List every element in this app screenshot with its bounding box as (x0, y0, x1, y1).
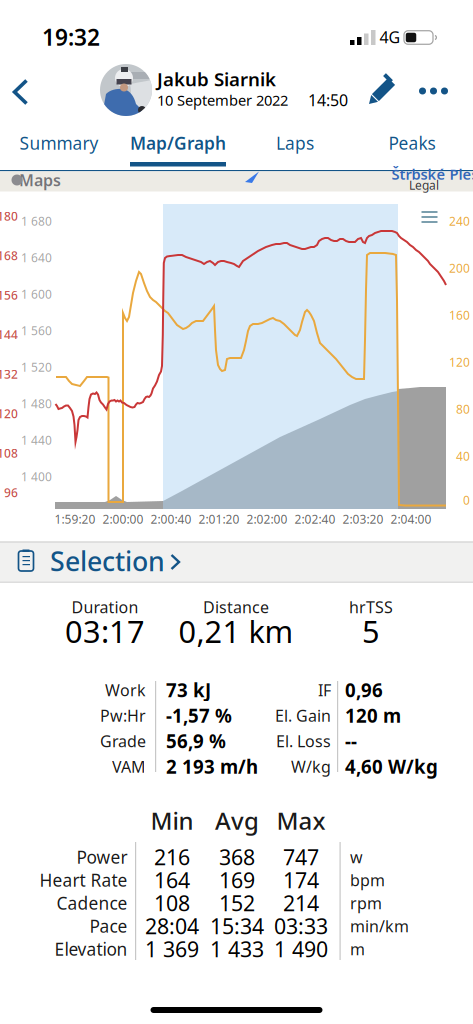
staticText: -- (345, 729, 357, 753)
button[interactable]: Back (0, 70, 40, 114)
staticText: hrTSS (349, 596, 393, 618)
staticText: Pace (89, 914, 127, 937)
staticText: 214 (283, 889, 319, 917)
staticText: 152 (219, 889, 255, 917)
staticText: 15:34 (210, 912, 264, 940)
staticText: 169 (219, 866, 255, 894)
staticText: Pw:Hr (100, 705, 146, 726)
staticText: 73 kJ (166, 678, 211, 702)
staticText: 174 (283, 866, 319, 894)
staticText: 10 September 2022 (157, 90, 288, 110)
staticText: W/kg (291, 756, 331, 777)
staticText: 1 520 (21, 359, 52, 375)
button[interactable]: Selection (0, 541, 473, 582)
staticText: 2:03:20 (342, 511, 383, 527)
button[interactable]: Map/Graph (128, 123, 228, 163)
staticText: 120 (449, 354, 470, 370)
staticText: 0 (463, 492, 470, 508)
staticText: 80 (456, 401, 470, 417)
staticText: 2:01:20 (198, 511, 239, 527)
staticText: Peaks (388, 131, 435, 154)
button[interactable]: Edit (362, 70, 402, 110)
staticText: 144 (0, 326, 18, 342)
button[interactable]: Summary (9, 123, 109, 163)
staticText: 160 (449, 307, 470, 323)
staticText: 1 400 (21, 468, 52, 484)
staticText: 1 680 (21, 213, 52, 229)
staticText: Distance (203, 596, 269, 618)
staticText: 2 193 m/h (166, 754, 258, 779)
staticText: 03:17 (65, 611, 145, 651)
staticText: Jakub Siarnik (157, 67, 276, 91)
staticText: 1 433 (210, 935, 264, 963)
staticText: Duration (71, 596, 138, 618)
staticText: 368 (219, 843, 255, 871)
staticText: 1:59:20 (54, 511, 95, 527)
staticText: El. Loss (276, 730, 331, 752)
staticText: 1 600 (21, 286, 52, 302)
staticText: Laps (276, 131, 314, 154)
staticText: 108 (154, 889, 190, 917)
staticText: Legal (409, 177, 439, 193)
staticText: 2:02:00 (246, 511, 287, 527)
staticText: 2:00:40 (150, 511, 191, 527)
staticText: 1 490 (274, 935, 328, 963)
staticText: IF (318, 679, 331, 701)
staticText: Min (150, 805, 193, 836)
staticText: 2:02:40 (294, 511, 335, 527)
staticText: 120 m (345, 703, 401, 728)
staticText: 0,21 km (178, 611, 293, 651)
staticText: 200 (449, 260, 470, 276)
button[interactable]: Jakub Siarnik (100, 62, 360, 118)
staticText: 4G (379, 26, 400, 48)
staticText: rpm (350, 892, 382, 914)
staticText: 1 640 (21, 249, 52, 265)
staticText: 168 (0, 247, 18, 263)
staticText: 1 480 (21, 395, 52, 411)
staticText: 240 (449, 213, 470, 229)
staticText: 03:33 (274, 912, 328, 940)
staticText: Elevation (54, 937, 127, 960)
staticText: 132 (0, 366, 18, 382)
staticText: Štrbské Ples (391, 164, 473, 184)
staticText: Heart Rate (39, 868, 127, 891)
staticText: Maps (19, 169, 61, 191)
button[interactable]: Laps (245, 123, 345, 163)
staticText: 96 (4, 484, 18, 500)
staticText: 19:32 (42, 22, 100, 52)
button[interactable]: Chart menu (415, 205, 443, 229)
staticText: 180 (0, 208, 18, 224)
staticText: Summary (19, 131, 98, 154)
staticText: 0,96 (345, 678, 383, 702)
staticText: bpm (350, 869, 385, 891)
staticText: 2:04:00 (390, 511, 431, 527)
staticText: 156 (0, 287, 18, 303)
staticText: 5 (362, 611, 380, 651)
staticText: Map/Graph (130, 131, 226, 154)
staticText: 1 560 (21, 322, 52, 338)
staticText: Work (105, 679, 146, 701)
staticText: m (350, 938, 365, 960)
staticText: 216 (154, 843, 190, 871)
staticText: Selection (50, 543, 165, 579)
staticText: 747 (283, 843, 319, 871)
staticText: VAM (112, 756, 146, 777)
staticText: Avg (215, 805, 259, 836)
staticText: w (350, 846, 363, 868)
staticText: min/km (350, 915, 409, 937)
staticText: 164 (154, 866, 190, 894)
button[interactable]: More (411, 69, 455, 113)
staticText: 4,60 W/kg (345, 754, 438, 779)
staticText: El. Gain (275, 705, 331, 726)
staticText: Grade (100, 730, 146, 752)
staticText: 40 (456, 448, 470, 464)
staticText: 28:04 (145, 912, 199, 940)
staticText: 120 (0, 405, 18, 421)
staticText: Max (276, 805, 325, 836)
staticText: 1 440 (21, 432, 52, 448)
staticText: 14:50 (308, 89, 348, 111)
button[interactable]: Peaks (362, 123, 462, 163)
staticText: 2:00:00 (102, 511, 143, 527)
staticText: 108 (0, 445, 18, 461)
staticText: 1 369 (145, 935, 199, 963)
